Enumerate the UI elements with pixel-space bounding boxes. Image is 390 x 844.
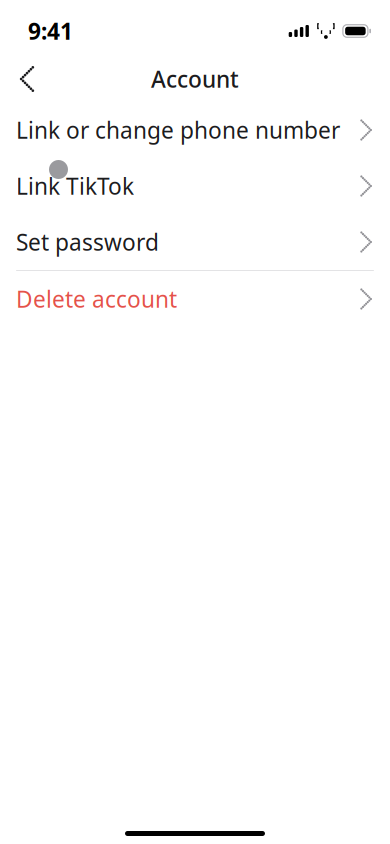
staticText: 9:41: [28, 16, 73, 46]
button[interactable]: Set password: [0, 214, 390, 270]
button[interactable]: Link or change phone number: [0, 102, 390, 158]
button[interactable]: Delete account: [0, 271, 390, 327]
staticText: Link or change phone number: [16, 115, 340, 145]
staticText: Delete account: [16, 284, 177, 314]
staticText: Set password: [16, 227, 159, 257]
staticText: Link TikTok: [16, 171, 134, 201]
staticText: Account: [151, 64, 239, 94]
button[interactable]: Back: [5, 57, 49, 101]
button[interactable]: Link TikTok: [0, 158, 390, 214]
